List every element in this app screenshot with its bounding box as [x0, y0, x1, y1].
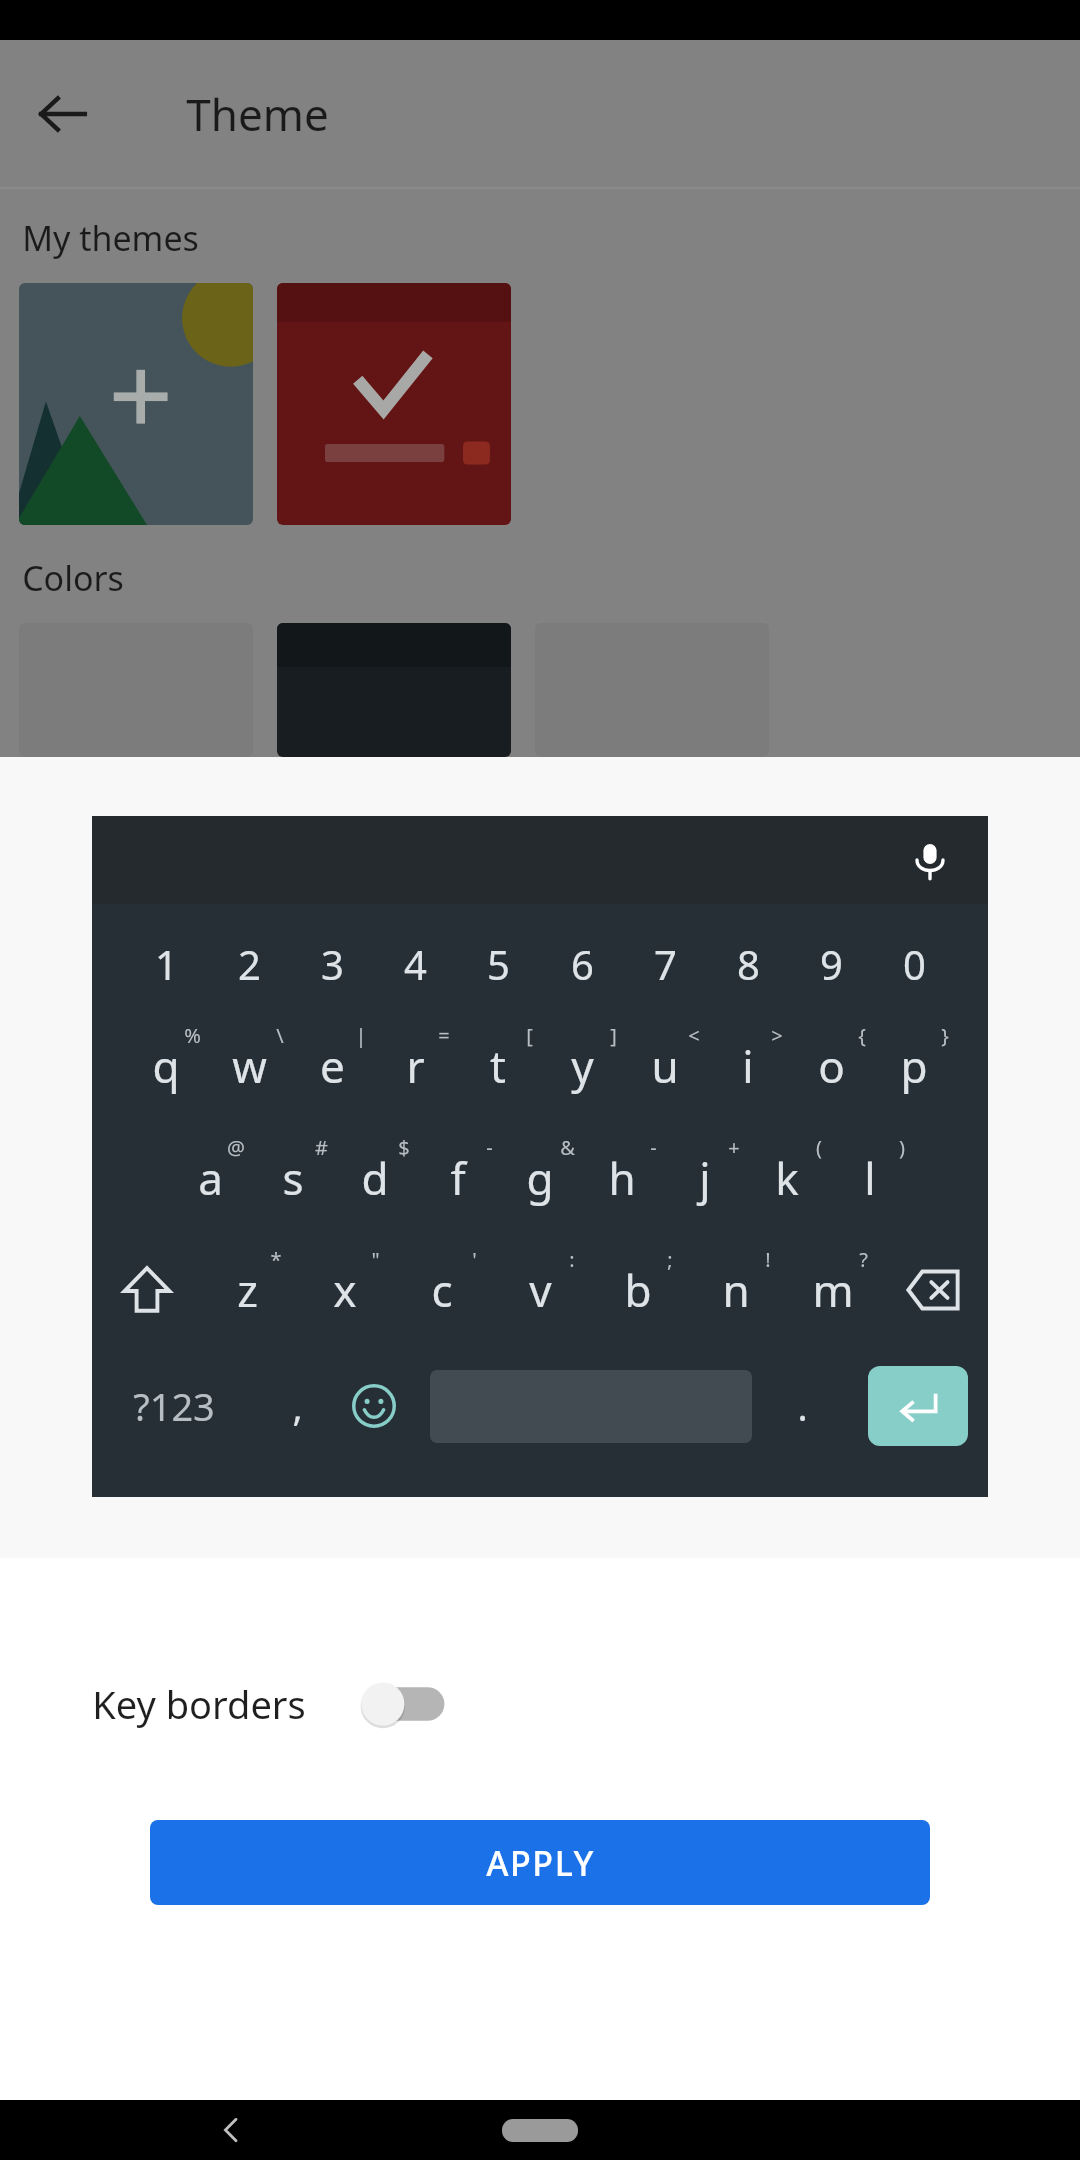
staticText: ? — [859, 1246, 868, 1273]
button[interactable]: 6 — [543, 918, 621, 1010]
staticText: ! — [765, 1246, 771, 1273]
button[interactable]: 7 — [626, 918, 704, 1010]
button[interactable] — [19, 283, 253, 525]
staticText: Colors — [22, 555, 124, 601]
staticText: My themes — [22, 215, 199, 261]
staticText: n — [722, 1260, 750, 1320]
button[interactable]: q — [127, 1016, 205, 1116]
button[interactable]: 2 — [210, 918, 288, 1010]
button[interactable]: l — [831, 1128, 909, 1228]
staticText: e — [320, 1036, 345, 1096]
staticText: s — [282, 1148, 304, 1208]
button[interactable]: Voice input — [898, 828, 962, 892]
button[interactable]: Key borders — [0, 1644, 1080, 1764]
staticText: { — [858, 1022, 866, 1049]
staticText: 1 — [155, 937, 178, 991]
staticText: p — [900, 1036, 928, 1096]
staticText: Key borders — [92, 1678, 306, 1730]
staticText: \ — [276, 1022, 284, 1049]
button[interactable]: h — [583, 1128, 661, 1228]
button[interactable]: p — [875, 1016, 953, 1116]
button[interactable]: c — [403, 1240, 481, 1340]
button[interactable]: Enter — [868, 1366, 968, 1446]
staticText: w — [232, 1036, 267, 1096]
button[interactable]: Shift — [102, 1245, 192, 1335]
staticText: b — [624, 1260, 652, 1320]
button[interactable]: Back — [196, 2100, 266, 2160]
staticText: | — [355, 1022, 367, 1049]
staticText: ( — [816, 1134, 822, 1161]
button[interactable]: b — [599, 1240, 677, 1340]
button[interactable]: s — [254, 1128, 332, 1228]
button[interactable]: Back — [24, 75, 102, 153]
button[interactable]: APPLY — [150, 1820, 930, 1905]
button[interactable]: j — [666, 1128, 744, 1228]
button[interactable]: m — [794, 1240, 872, 1340]
button[interactable]: 0 — [875, 918, 953, 1010]
staticText: 3 — [321, 937, 344, 991]
staticText: x — [333, 1260, 357, 1320]
button[interactable]: Emoji — [336, 1364, 412, 1448]
button[interactable]: g — [501, 1128, 579, 1228]
staticText: c — [431, 1260, 453, 1320]
staticText: % — [184, 1022, 201, 1049]
button[interactable] — [277, 283, 511, 525]
staticText: 7 — [654, 937, 677, 991]
button[interactable]: z — [208, 1240, 286, 1340]
button[interactable]: e — [293, 1016, 371, 1116]
button[interactable]: 4 — [376, 918, 454, 1010]
button[interactable]: ?123 — [114, 1364, 234, 1448]
staticText: - — [650, 1134, 657, 1161]
button[interactable]: Backspace — [888, 1245, 978, 1335]
staticText: j — [699, 1148, 711, 1208]
button[interactable]: 9 — [792, 918, 870, 1010]
button[interactable]: i — [709, 1016, 787, 1116]
staticText: l — [864, 1148, 876, 1208]
staticText: 9 — [820, 937, 843, 991]
staticText: g — [526, 1148, 554, 1208]
staticText: - — [486, 1134, 493, 1161]
button[interactable]: t — [459, 1016, 537, 1116]
staticText: [ — [526, 1022, 533, 1049]
staticText: d — [361, 1148, 389, 1208]
staticText: Theme — [186, 84, 329, 144]
button[interactable]: 5 — [459, 918, 537, 1010]
button[interactable]: w — [210, 1016, 288, 1116]
button[interactable]: y — [543, 1016, 621, 1116]
staticText: a — [198, 1148, 223, 1208]
staticText: y — [571, 1036, 594, 1096]
staticText: ) — [899, 1134, 905, 1161]
staticText: h — [608, 1148, 636, 1208]
button[interactable]: r — [376, 1016, 454, 1116]
button[interactable]: a — [171, 1128, 249, 1228]
button[interactable]: , — [262, 1364, 332, 1448]
button[interactable]: f — [419, 1128, 497, 1228]
button[interactable]: o — [792, 1016, 870, 1116]
button[interactable]: u — [626, 1016, 704, 1116]
button[interactable] — [277, 623, 511, 757]
button[interactable]: v — [501, 1240, 579, 1340]
button[interactable]: k — [748, 1128, 826, 1228]
staticText: * — [270, 1246, 282, 1273]
staticText: ; — [667, 1246, 673, 1273]
staticText: . — [797, 1380, 808, 1432]
staticText: o — [818, 1036, 845, 1096]
staticText: @ — [227, 1134, 245, 1161]
staticText: u — [651, 1036, 679, 1096]
button[interactable]: n — [697, 1240, 775, 1340]
button[interactable]: Home — [502, 2119, 578, 2142]
button[interactable]: 1 — [127, 918, 205, 1010]
button[interactable]: Key borders toggle — [358, 1677, 448, 1731]
button[interactable]: d — [336, 1128, 414, 1228]
button[interactable]: . — [767, 1364, 837, 1448]
button[interactable]: x — [306, 1240, 384, 1340]
staticText: < — [688, 1022, 700, 1049]
button[interactable]: 3 — [293, 918, 371, 1010]
staticText: 5 — [487, 937, 510, 991]
staticText: , — [292, 1380, 303, 1432]
staticText: k — [775, 1148, 799, 1208]
button[interactable]: 8 — [709, 918, 787, 1010]
